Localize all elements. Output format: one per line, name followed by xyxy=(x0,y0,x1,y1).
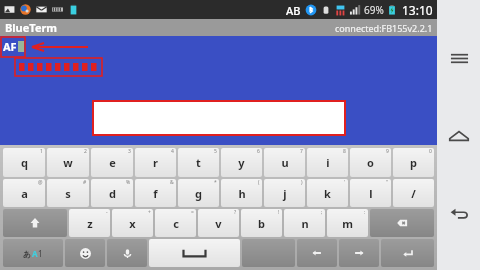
staticText: i xyxy=(326,155,330,170)
staticText: f xyxy=(153,186,158,201)
staticText: y xyxy=(238,155,245,170)
button[interactable]: Symbols xyxy=(242,239,295,267)
staticText: / xyxy=(411,186,416,201)
staticText: 0 xyxy=(429,148,432,155)
button[interactable]: Space xyxy=(149,239,240,267)
button[interactable]: Switch language xyxy=(3,239,63,267)
button[interactable]: e xyxy=(91,148,133,177)
button[interactable]: Home xyxy=(439,116,479,156)
staticText: a xyxy=(21,186,28,201)
button[interactable]: w xyxy=(47,148,89,177)
staticText: - xyxy=(106,209,108,216)
staticText: & xyxy=(170,179,174,186)
button[interactable]: r xyxy=(135,148,176,177)
staticText: r xyxy=(153,155,158,170)
staticText: 13:10 xyxy=(402,2,433,18)
button[interactable]: v xyxy=(198,209,239,237)
staticText: = xyxy=(191,209,194,216)
staticText: BlueTerm xyxy=(5,20,58,35)
button[interactable]: c xyxy=(155,209,196,237)
other: Enter xyxy=(400,246,415,261)
button[interactable]: m xyxy=(327,209,368,237)
staticText: AF xyxy=(3,39,17,54)
button[interactable]: Voice input xyxy=(107,239,147,267)
staticText: j xyxy=(283,186,287,201)
button[interactable]: o xyxy=(350,148,391,177)
staticText: ! xyxy=(278,209,280,216)
staticText: e xyxy=(109,155,116,170)
button[interactable]: Right xyxy=(339,239,379,267)
button[interactable]: s xyxy=(47,179,89,207)
staticText: 9 xyxy=(386,148,389,155)
staticText: o xyxy=(367,155,374,170)
button[interactable]: y xyxy=(221,148,262,177)
staticText: w xyxy=(63,155,73,170)
button[interactable]: q xyxy=(3,148,45,177)
button[interactable]: u xyxy=(264,148,305,177)
button[interactable]: / xyxy=(393,179,434,207)
staticText: * xyxy=(214,179,217,186)
button[interactable]: Enter xyxy=(381,239,434,267)
button[interactable]: Backspace xyxy=(370,209,434,237)
staticText: u xyxy=(281,155,289,170)
staticText: p xyxy=(410,155,417,170)
button[interactable]: Left xyxy=(297,239,337,267)
staticText: connected:FB155v2.2.1 xyxy=(335,22,433,34)
staticText: 5 xyxy=(214,148,217,155)
button[interactable]: i xyxy=(307,148,348,177)
staticText: d xyxy=(109,186,116,201)
staticText: b xyxy=(258,216,265,231)
staticText: l xyxy=(369,186,373,201)
staticText: x xyxy=(129,216,136,231)
staticText: ) xyxy=(301,179,303,186)
other: Left xyxy=(310,246,324,260)
staticText: % xyxy=(126,179,131,186)
button[interactable]: Back xyxy=(439,194,479,234)
button[interactable]: n xyxy=(284,209,325,237)
staticText: m xyxy=(342,216,353,231)
staticText: q xyxy=(21,155,28,170)
staticText: 6 xyxy=(257,148,260,155)
button[interactable]: t xyxy=(178,148,219,177)
other: Voice input xyxy=(121,247,134,260)
staticText: + xyxy=(148,209,151,216)
button[interactable]: Emoji xyxy=(65,239,105,267)
button[interactable]: x xyxy=(112,209,153,237)
other: Space xyxy=(149,239,240,267)
staticText: A xyxy=(32,248,38,259)
button[interactable]: f xyxy=(135,179,176,207)
other: Shift xyxy=(28,216,42,230)
button[interactable]: l xyxy=(350,179,391,207)
button[interactable]: Menu xyxy=(439,38,479,78)
button[interactable]: b xyxy=(241,209,282,237)
staticText: 4 xyxy=(171,148,174,155)
staticText: k xyxy=(324,186,331,201)
staticText: h xyxy=(238,186,246,201)
staticText: n xyxy=(301,216,309,231)
staticText: z xyxy=(87,216,93,231)
staticText: " xyxy=(386,179,389,186)
staticText: ? xyxy=(234,209,237,216)
button[interactable]: d xyxy=(91,179,133,207)
staticText: 69% xyxy=(364,3,384,17)
staticText: # xyxy=(83,179,87,186)
staticText: 7 xyxy=(300,148,303,155)
button[interactable]: h xyxy=(221,179,262,207)
staticText: v xyxy=(215,216,222,231)
staticText: ; xyxy=(321,209,323,216)
staticText: c xyxy=(173,216,179,231)
staticText: 1 xyxy=(38,248,43,259)
button[interactable]: g xyxy=(178,179,219,207)
staticText: t xyxy=(196,155,201,170)
button[interactable]: a xyxy=(3,179,45,207)
staticText: 3 xyxy=(128,148,131,155)
staticText: あ xyxy=(23,249,32,259)
staticText: g xyxy=(195,186,202,201)
button[interactable]: z xyxy=(69,209,110,237)
staticText: 1 xyxy=(40,148,43,155)
button[interactable]: p xyxy=(393,148,434,177)
button[interactable]: k xyxy=(307,179,348,207)
button[interactable]: j xyxy=(264,179,305,207)
button[interactable]: Shift xyxy=(3,209,67,237)
